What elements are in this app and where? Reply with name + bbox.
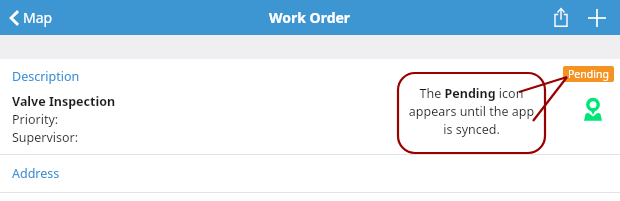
staticText: Work Order	[269, 8, 351, 27]
button[interactable]: Technician location	[583, 99, 603, 121]
staticText: Valve Inspection	[12, 93, 116, 110]
staticText: Supervisor:	[12, 129, 79, 146]
button[interactable]: Share	[548, 4, 574, 31]
staticText: Pending	[568, 67, 609, 81]
button[interactable]: Map	[7, 3, 56, 32]
staticText: Description	[12, 68, 80, 85]
staticText: The Pending icon appears until the app i…	[405, 85, 538, 138]
staticText: Priority:	[12, 111, 59, 128]
button[interactable]: Address	[0, 155, 620, 192]
button[interactable]: Pending	[563, 66, 614, 82]
staticText: Address	[12, 165, 60, 182]
button[interactable]: Add	[583, 5, 611, 31]
staticText: Map	[23, 8, 53, 27]
button[interactable]: Description	[0, 59, 620, 154]
